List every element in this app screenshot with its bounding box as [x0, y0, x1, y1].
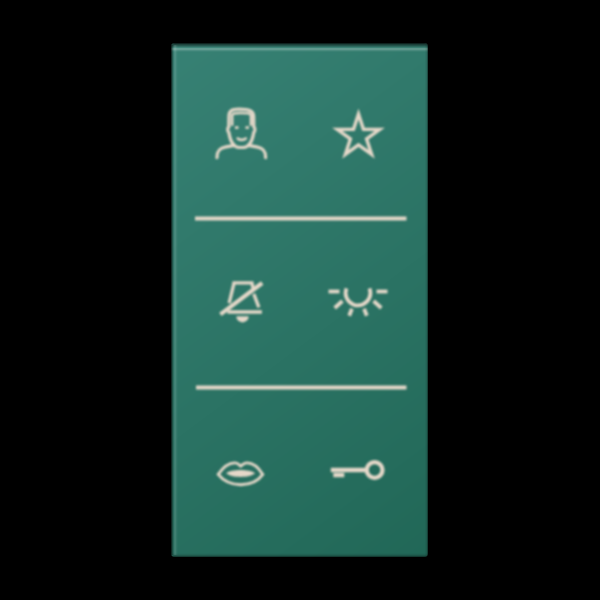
button[interactable]: Favourites	[317, 92, 401, 176]
button[interactable]: Unlock door	[316, 428, 400, 512]
button[interactable]: Room service	[198, 431, 282, 515]
button[interactable]: Concierge	[200, 91, 284, 175]
other: Hotel room control panel	[171, 43, 428, 557]
button[interactable]: Do not disturb	[202, 258, 286, 342]
button[interactable]: Room light	[316, 251, 400, 335]
